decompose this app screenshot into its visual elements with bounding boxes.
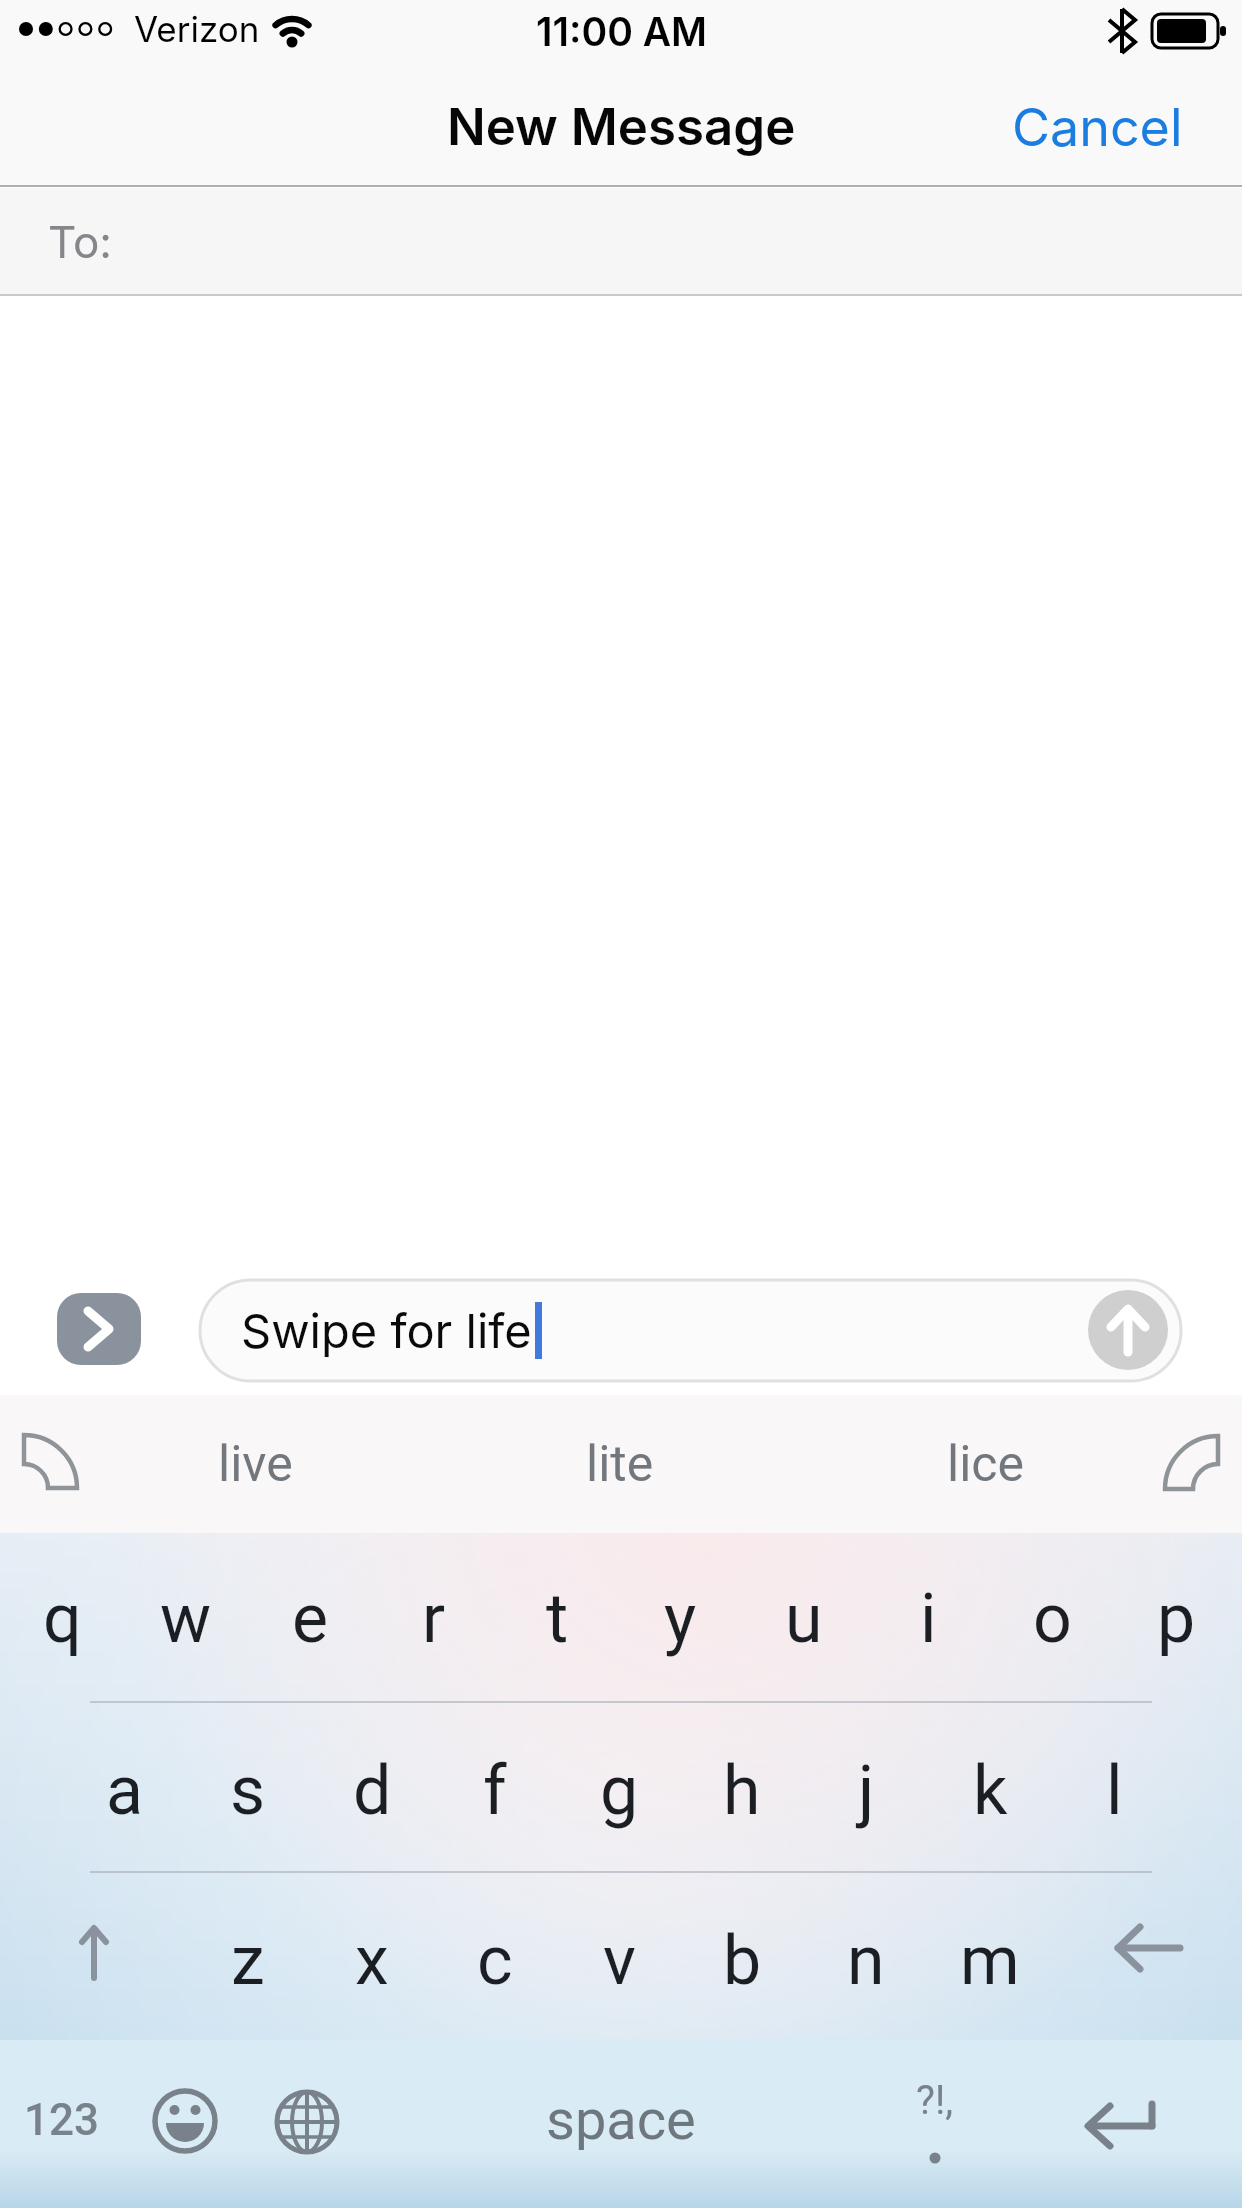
staticText: i <box>920 1579 937 1659</box>
staticText: r <box>422 1579 446 1659</box>
staticText: w <box>160 1579 212 1659</box>
staticText: g <box>600 1751 639 1831</box>
staticText: 123 <box>24 2094 100 2146</box>
staticText: u <box>785 1579 823 1659</box>
staticText: h <box>723 1751 761 1831</box>
staticText: c <box>477 1921 513 2001</box>
staticText: t <box>546 1579 569 1659</box>
staticText: a <box>106 1751 143 1831</box>
staticText: q <box>43 1579 82 1659</box>
staticText: To: <box>48 215 113 268</box>
staticText: m <box>960 1921 1020 2001</box>
staticText: d <box>353 1751 392 1831</box>
staticText: space <box>546 2087 696 2153</box>
staticText: o <box>1033 1579 1072 1659</box>
staticText: k <box>973 1751 1008 1831</box>
staticText: x <box>355 1921 389 2001</box>
staticText: Cancel <box>1012 96 1183 159</box>
staticText: b <box>723 1921 762 2001</box>
staticText: z <box>231 1921 265 2001</box>
staticText: Verizon <box>134 8 260 50</box>
staticText: v <box>603 1921 636 2001</box>
staticText: e <box>292 1579 329 1659</box>
staticText: 11:00 AM <box>536 8 708 55</box>
staticText: j <box>858 1751 875 1831</box>
staticText: lice <box>947 1435 1025 1494</box>
staticText: New Message <box>447 96 796 158</box>
staticText: f <box>483 1751 507 1831</box>
staticText: lite <box>586 1435 654 1494</box>
staticText: y <box>664 1579 697 1659</box>
staticText: live <box>218 1435 293 1494</box>
staticText: n <box>847 1921 885 2001</box>
staticText: l <box>1106 1751 1123 1831</box>
staticText: ?!, <box>916 2077 954 2124</box>
staticText: p <box>1157 1579 1196 1659</box>
staticText: Swipe for life <box>241 1302 532 1359</box>
staticText: s <box>230 1751 266 1831</box>
